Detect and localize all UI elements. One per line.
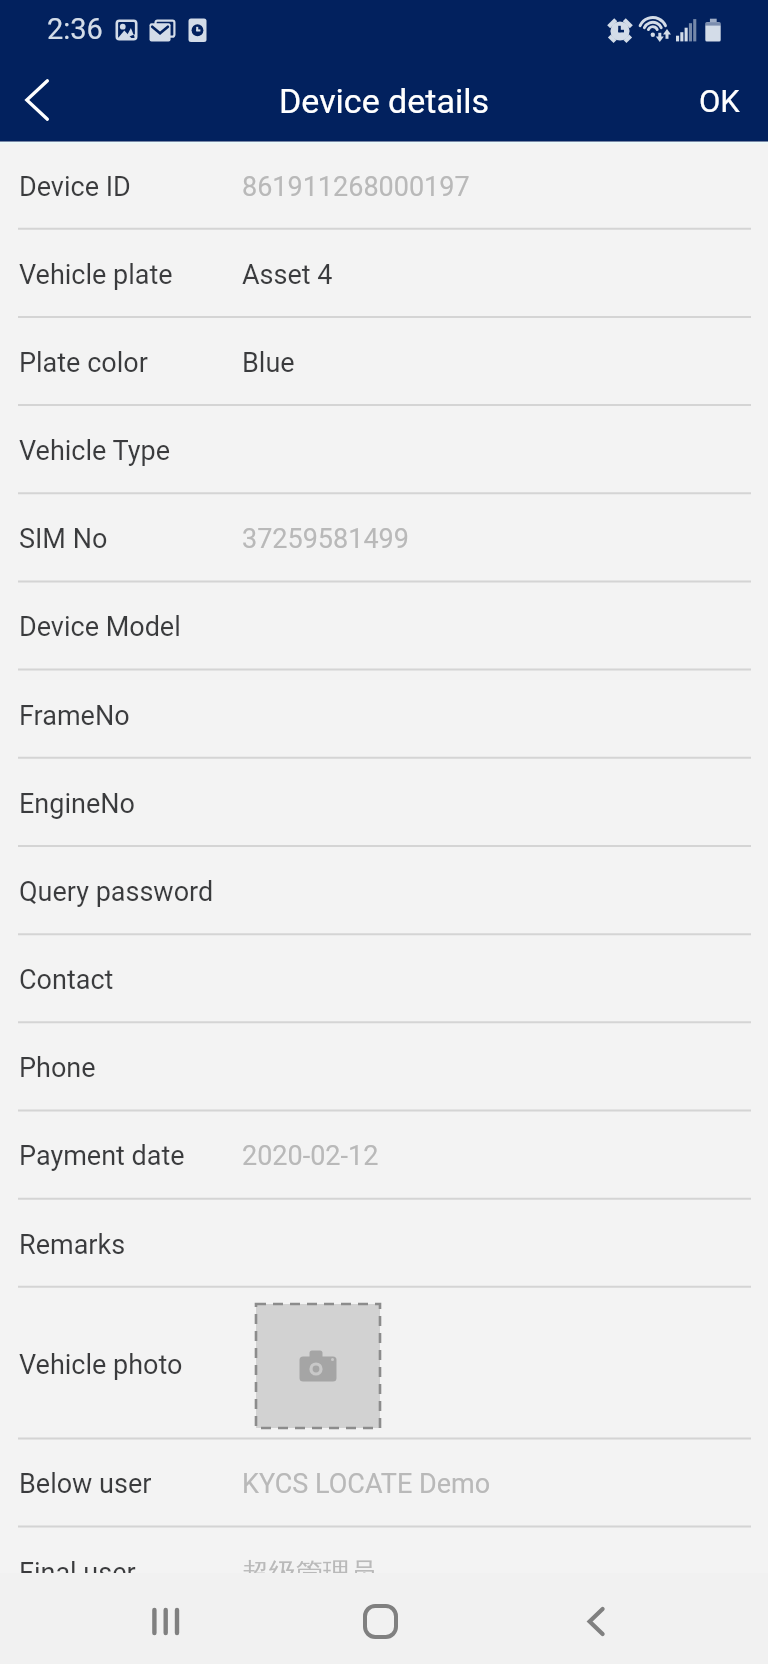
staticText: Asset 4 <box>242 259 333 291</box>
staticText: Device details <box>279 81 490 121</box>
staticText: Vehicle photo <box>19 1349 183 1381</box>
button[interactable]: SIM No <box>0 494 768 582</box>
button[interactable]: OK <box>669 62 768 141</box>
staticText: Device ID <box>19 171 131 203</box>
button[interactable]: Final user <box>0 1528 768 1616</box>
staticText: 2020-02-12 <box>242 1140 379 1172</box>
staticText: Payment date <box>19 1140 185 1172</box>
button[interactable]: Query password <box>0 847 768 935</box>
staticText: 2:36 <box>47 12 103 46</box>
button[interactable]: Back <box>550 1573 642 1664</box>
button[interactable]: Home <box>334 1573 426 1664</box>
button[interactable]: Device Model <box>0 582 768 670</box>
button[interactable]: Vehicle photo <box>0 1288 768 1440</box>
staticText: Remarks <box>19 1229 126 1261</box>
button[interactable]: Phone <box>0 1023 768 1111</box>
staticText: Below user <box>19 1468 152 1500</box>
staticText: Plate color <box>19 347 148 379</box>
staticText: Blue <box>242 347 295 379</box>
staticText: 37259581499 <box>242 523 409 555</box>
button[interactable]: Vehicle plate <box>0 230 768 318</box>
button[interactable]: Recent apps <box>120 1573 212 1664</box>
button[interactable]: Plate color <box>0 318 768 406</box>
button[interactable]: Add vehicle photo <box>256 1304 380 1428</box>
staticText: Device Model <box>19 611 181 643</box>
staticText: EngineNo <box>19 788 135 820</box>
button[interactable]: Payment date <box>0 1111 768 1199</box>
staticText: Vehicle plate <box>19 259 173 291</box>
button[interactable]: Vehicle Type <box>0 406 768 494</box>
staticText: OK <box>699 83 740 119</box>
staticText: FrameNo <box>19 700 130 732</box>
staticText: SIM No <box>19 523 108 555</box>
staticText: Phone <box>19 1052 96 1084</box>
button[interactable]: Device ID <box>0 142 768 230</box>
button[interactable]: Below user <box>0 1439 768 1527</box>
staticText: KYCS LOCATE Demo <box>242 1468 491 1500</box>
staticText: Vehicle Type <box>19 435 170 467</box>
button[interactable]: Remarks <box>0 1200 768 1288</box>
button[interactable]: FrameNo <box>0 671 768 759</box>
staticText: 超级管理员 <box>242 1556 377 1590</box>
button[interactable]: EngineNo <box>0 759 768 847</box>
staticText: Query password <box>19 876 214 908</box>
button[interactable]: Contact <box>0 935 768 1023</box>
staticText: 861911268000197 <box>242 171 470 203</box>
button[interactable]: Back <box>0 62 74 141</box>
staticText: Contact <box>19 964 114 996</box>
staticText: Final user <box>19 1557 136 1589</box>
